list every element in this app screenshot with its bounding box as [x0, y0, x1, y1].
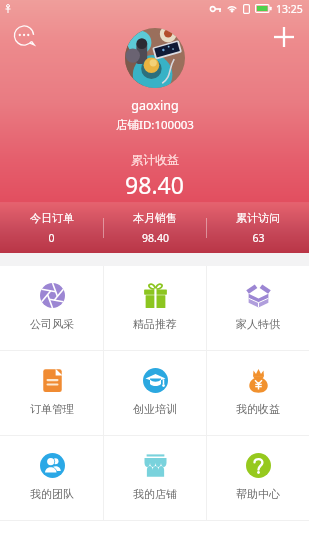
- button[interactable]: 精品推荐: [104, 266, 206, 350]
- staticText: 63: [252, 231, 265, 245]
- staticText: 98.40: [125, 169, 184, 200]
- button[interactable]: 我的团队: [0, 436, 103, 520]
- staticText: 本月销售: [133, 211, 177, 225]
- staticText: 店铺ID:100003: [116, 117, 194, 133]
- staticText: 公司风采: [30, 317, 74, 331]
- button[interactable]: 累计访问: [207, 203, 309, 253]
- staticText: 今日订单: [30, 211, 74, 225]
- staticText: 累计访问: [236, 211, 280, 225]
- button[interactable]: 本月销售: [104, 203, 206, 253]
- button[interactable]: 帮助中心: [207, 436, 309, 520]
- staticText: 家人特供: [236, 317, 280, 331]
- button[interactable]: 今日订单: [0, 203, 103, 253]
- staticText: gaoxing: [131, 97, 179, 114]
- staticText: 我的店铺: [133, 487, 177, 501]
- staticText: 我的收益: [236, 402, 280, 416]
- button[interactable]: 我的店铺: [104, 436, 206, 520]
- staticText: 创业培训: [133, 402, 177, 416]
- staticText: 98.40: [142, 231, 169, 245]
- button[interactable]: 创业培训: [104, 351, 206, 435]
- staticText: 精品推荐: [133, 317, 177, 331]
- staticText: 订单管理: [30, 402, 74, 416]
- button[interactable]: Add: [272, 25, 296, 49]
- button[interactable]: 订单管理: [0, 351, 103, 435]
- button[interactable]: 公司风采: [0, 266, 103, 350]
- staticText: 我的团队: [30, 487, 74, 501]
- button[interactable]: 家人特供: [207, 266, 309, 350]
- staticText: 帮助中心: [236, 487, 280, 501]
- button[interactable]: 我的收益: [207, 351, 309, 435]
- staticText: 累计收益: [131, 152, 179, 167]
- staticText: 0: [48, 231, 55, 245]
- button[interactable]: Profile photo: [125, 28, 185, 88]
- staticText: 13:25: [276, 2, 303, 16]
- button[interactable]: Messages: [13, 25, 37, 49]
